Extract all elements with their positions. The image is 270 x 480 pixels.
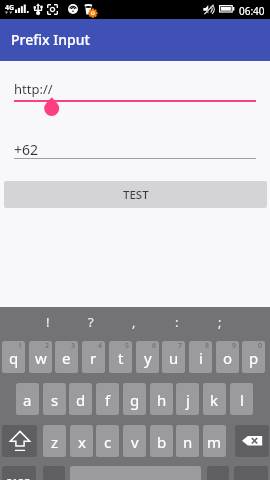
button[interactable]: TEST (4, 181, 267, 208)
button[interactable]: c (96, 425, 119, 457)
staticText: b (157, 432, 167, 452)
staticText: o (223, 348, 233, 368)
staticText: k (210, 390, 219, 410)
staticText: 5 (125, 341, 130, 351)
staticText: , (132, 313, 136, 331)
staticText: p (249, 348, 259, 368)
staticText: ? (88, 313, 94, 331)
button[interactable]: t (109, 341, 132, 373)
button[interactable]: w (29, 341, 52, 373)
staticText: x (78, 432, 86, 452)
staticText: n (183, 432, 193, 452)
staticText: 4 (98, 341, 103, 351)
button[interactable]: Symbols (2, 466, 36, 480)
staticText: z (51, 432, 59, 452)
staticText: d (76, 390, 86, 410)
button[interactable]: k (203, 383, 226, 415)
button[interactable]: y (136, 341, 159, 373)
staticText: : (175, 313, 179, 331)
button[interactable]: , (123, 307, 145, 337)
staticText: 3 (71, 341, 76, 351)
staticText: i (199, 348, 203, 368)
button[interactable]: Shift (2, 425, 37, 457)
button[interactable]: ; (209, 307, 231, 337)
staticText: g (130, 390, 140, 410)
staticText: ; (218, 313, 222, 331)
button[interactable]: e (55, 341, 78, 373)
button[interactable]: : (166, 307, 188, 337)
staticText: TEST (123, 187, 149, 203)
button[interactable]: f (96, 383, 119, 415)
staticText: q (9, 348, 19, 368)
staticText: h (157, 390, 167, 410)
button[interactable]: Backspace (235, 425, 269, 457)
button[interactable]: ? (80, 307, 102, 337)
staticText: ?123 (7, 475, 31, 480)
staticText: t (118, 348, 124, 368)
staticText: y (144, 348, 152, 368)
staticText: c (104, 432, 112, 452)
button[interactable]: o (216, 341, 239, 373)
staticText: +62 (14, 140, 39, 159)
button[interactable]: d (69, 383, 92, 415)
staticText: v (131, 432, 139, 452)
staticText: m (207, 432, 222, 452)
button[interactable]: g (123, 383, 146, 415)
button[interactable]: x (70, 425, 93, 457)
button[interactable]: n (176, 425, 199, 457)
staticText: 1 (18, 341, 23, 351)
staticText: u (169, 348, 179, 368)
staticText: 06:40 (239, 4, 265, 18)
button[interactable]: r (82, 341, 105, 373)
button[interactable]: u (162, 341, 185, 373)
button[interactable]: v (123, 425, 146, 457)
button[interactable]: z (43, 425, 66, 457)
staticText: 7 (178, 341, 183, 351)
button[interactable]: p (242, 341, 265, 373)
staticText: f (105, 390, 111, 410)
staticText: r (90, 348, 97, 368)
staticText: 0 (258, 341, 263, 351)
button[interactable]: b (150, 425, 173, 457)
staticText: ! (46, 313, 50, 331)
button[interactable]: a (16, 383, 39, 415)
staticText: 9 (232, 341, 237, 351)
button[interactable]: j (176, 383, 199, 415)
staticText: e (62, 348, 71, 368)
button[interactable]: i (189, 341, 212, 373)
staticText: a (23, 390, 32, 410)
button[interactable]: s (43, 383, 66, 415)
staticText: w (35, 348, 47, 368)
button[interactable]: l (230, 383, 253, 415)
staticText: j (186, 390, 190, 410)
staticText: Prefix Input (11, 30, 90, 49)
staticText: 4G (5, 3, 15, 13)
button[interactable]: h (150, 383, 173, 415)
staticText: 6 (152, 341, 157, 351)
staticText: 2 (45, 341, 50, 351)
staticText: s (51, 390, 59, 410)
staticText: l (240, 390, 244, 410)
button[interactable]: ! (37, 307, 59, 337)
staticText: 8 (205, 341, 210, 351)
button[interactable]: q (2, 341, 25, 373)
button[interactable]: m (203, 425, 226, 457)
staticText: http:// (14, 80, 53, 98)
